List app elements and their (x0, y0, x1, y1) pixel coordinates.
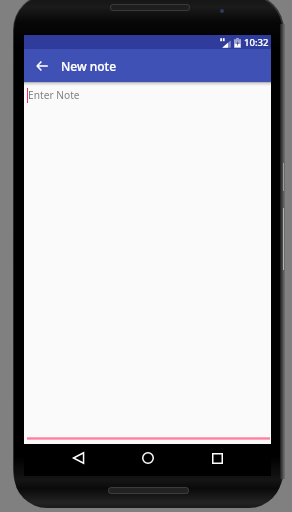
button[interactable]: Recent apps (205, 446, 229, 470)
staticText: New note (61, 58, 117, 74)
button[interactable]: Navigate up (30, 54, 54, 78)
staticText: 10:32 (244, 36, 269, 49)
button[interactable]: Home (136, 446, 160, 470)
other: Mobile signal (220, 38, 231, 48)
staticText: Enter Note (28, 88, 80, 102)
other: Battery (234, 38, 241, 48)
button[interactable]: Back (67, 446, 91, 470)
